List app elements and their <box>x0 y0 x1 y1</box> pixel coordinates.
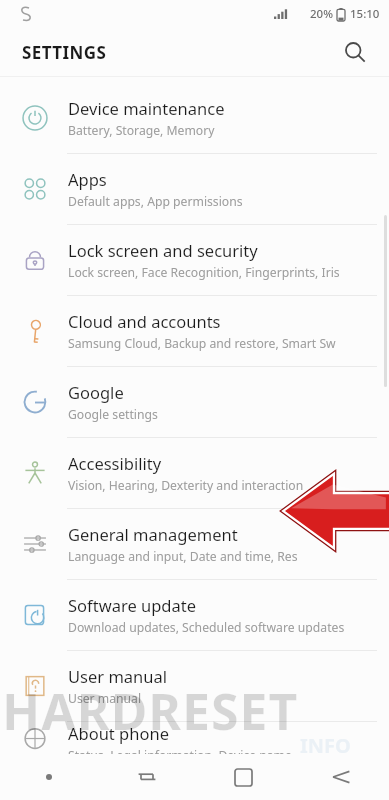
staticText: Software update <box>68 594 196 616</box>
staticText: SETTINGS <box>22 41 107 64</box>
staticText: About phone <box>68 722 169 744</box>
staticText: General management <box>68 523 238 545</box>
button[interactable]: Back <box>292 754 389 800</box>
button[interactable]: Recent apps <box>98 754 195 800</box>
staticText: INFO <box>300 732 351 759</box>
button[interactable]: Home <box>195 754 292 800</box>
staticText: Cloud and accounts <box>68 310 221 332</box>
button[interactable]: Software update <box>0 580 389 650</box>
staticText: Samsung Cloud, Backup and restore, Smart… <box>68 335 336 352</box>
staticText: Lock screen, Face Recognition, Fingerpri… <box>68 264 340 281</box>
staticText: Download updates, Scheduled software upd… <box>68 619 345 636</box>
staticText: User manual <box>68 690 142 707</box>
staticText: 20% <box>310 6 333 22</box>
button[interactable]: General management <box>0 509 389 579</box>
button[interactable]: Search <box>335 32 375 72</box>
staticText: Google <box>68 381 124 403</box>
button[interactable]: Google <box>0 367 389 437</box>
staticText: Lock screen and security <box>68 239 258 261</box>
staticText: Language and input, Date and time, Res <box>68 548 298 565</box>
button[interactable]: Device maintenance <box>0 83 389 153</box>
staticText: Status, Legal information, Device name <box>68 747 292 754</box>
button[interactable]: User manual <box>0 651 389 721</box>
button[interactable]: Accessibility <box>0 438 389 508</box>
staticText: Apps <box>68 168 107 190</box>
button[interactable]: Indicator <box>0 754 98 800</box>
staticText: Default apps, App permissions <box>68 193 243 210</box>
staticText: HARDRESET <box>2 677 299 745</box>
staticText: Device maintenance <box>68 97 225 119</box>
staticText: Accessibility <box>68 452 162 474</box>
button[interactable]: Apps <box>0 154 389 224</box>
staticText: Battery, Storage, Memory <box>68 122 215 139</box>
button[interactable]: About phone <box>0 722 389 754</box>
staticText: Vision, Hearing, Dexterity and interacti… <box>68 477 304 494</box>
button[interactable]: Cloud and accounts <box>0 296 389 366</box>
staticText: Google settings <box>68 406 158 423</box>
staticText: User manual <box>68 665 167 687</box>
button[interactable]: Lock screen and security <box>0 225 389 295</box>
staticText: 15:10 <box>350 6 380 22</box>
